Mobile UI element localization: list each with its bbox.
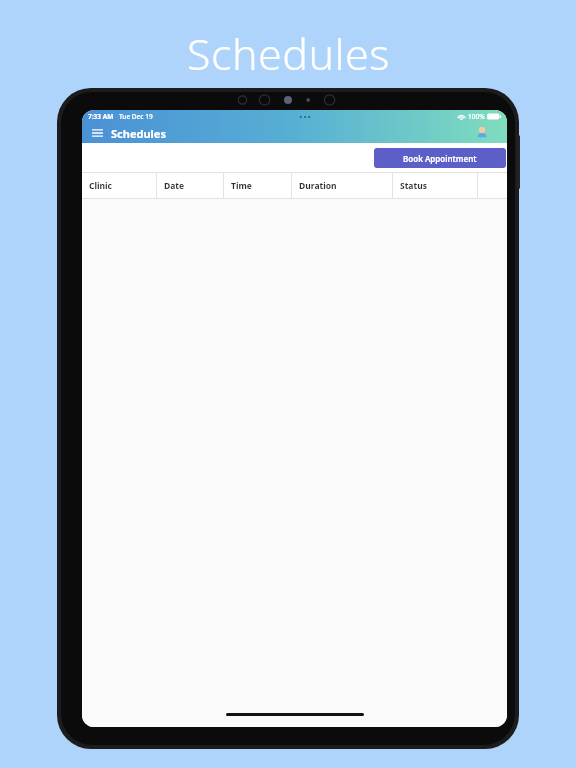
button[interactable]: Date	[157, 172, 224, 199]
staticText: 100%	[468, 112, 485, 121]
staticText: Time	[231, 180, 252, 192]
button[interactable]: Clinic	[82, 172, 157, 199]
button[interactable]: Account menu	[473, 126, 500, 140]
staticText: Status	[400, 180, 427, 192]
button[interactable]: Time	[224, 172, 292, 199]
button[interactable]: Duration	[292, 172, 393, 199]
staticText: Duration	[299, 180, 337, 192]
staticText: Book Appointment	[403, 153, 477, 164]
staticText: Clinic	[89, 180, 112, 192]
button[interactable]: Book Appointment	[374, 148, 506, 168]
button[interactable]: Status	[393, 172, 478, 199]
staticText: Tue Dec 19	[119, 112, 153, 121]
staticText: Schedules	[187, 24, 390, 83]
staticText: Schedules	[111, 126, 166, 141]
staticText: Date	[164, 180, 185, 192]
staticText: 7:33 AM	[88, 112, 114, 121]
button[interactable]: Open navigation menu	[89, 125, 105, 141]
button[interactable]	[478, 172, 507, 199]
